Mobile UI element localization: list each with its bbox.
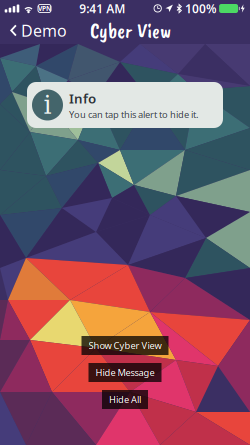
staticText: 9:41 AM: [79, 0, 125, 16]
staticText: VPN: [38, 4, 51, 13]
button[interactable]: Hide All: [102, 390, 148, 409]
staticText: Cyber View: [90, 17, 171, 44]
staticText: i: [43, 90, 51, 120]
staticText: Show Cyber View: [88, 339, 161, 352]
staticText: Info: [69, 89, 96, 107]
button[interactable]: i: [27, 82, 223, 128]
button[interactable]: Demo: [4, 15, 73, 46]
staticText: You can tap this alert to hide it.: [69, 108, 199, 121]
button[interactable]: Show Cyber View: [81, 336, 168, 355]
staticText: Demo: [21, 20, 67, 41]
staticText: Hide All: [109, 393, 141, 406]
staticText: 100%: [185, 0, 217, 16]
staticText: Hide Message: [95, 366, 154, 379]
button[interactable]: Hide Message: [88, 363, 161, 382]
